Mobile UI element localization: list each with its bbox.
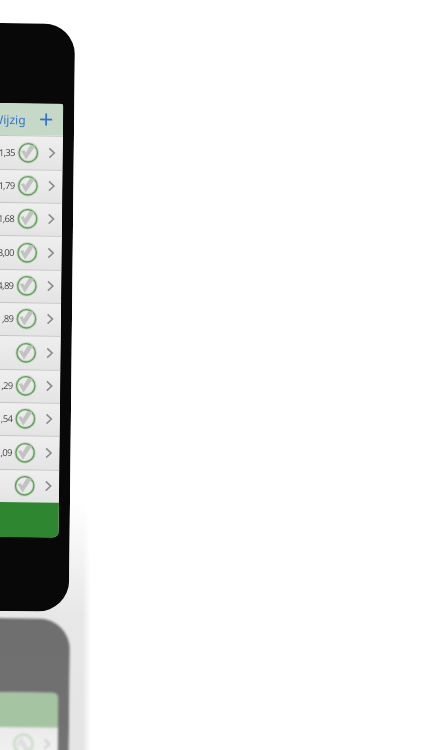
button[interactable] bbox=[0, 690, 58, 728]
button[interactable]: ,89 bbox=[0, 300, 61, 336]
button[interactable]: Add item bbox=[34, 107, 58, 132]
staticText: 1,35 bbox=[0, 146, 16, 159]
staticText: ,89 bbox=[2, 312, 14, 325]
button[interactable]: Wijzig bbox=[0, 107, 29, 131]
button[interactable]: ,29 bbox=[0, 367, 60, 403]
button[interactable]: 1,35 bbox=[0, 133, 63, 170]
button[interactable]: ,09 bbox=[0, 433, 60, 470]
staticText: Wijzig bbox=[0, 111, 26, 127]
button[interactable]: 4,89 bbox=[0, 267, 61, 303]
staticText: ,29 bbox=[1, 379, 13, 392]
button[interactable]: 3,00 bbox=[0, 233, 62, 270]
button[interactable] bbox=[0, 725, 58, 750]
button[interactable] bbox=[0, 500, 59, 538]
button[interactable]: 1,79 bbox=[0, 167, 63, 203]
staticText: 4,89 bbox=[0, 279, 14, 292]
staticText: ,54 bbox=[1, 412, 13, 425]
staticText: ,09 bbox=[0, 446, 13, 459]
button[interactable]: 1,68 bbox=[0, 200, 62, 236]
staticText: 3,00 bbox=[0, 246, 15, 259]
button[interactable]: ,54 bbox=[0, 400, 60, 436]
staticText: 1,79 bbox=[0, 179, 16, 192]
button[interactable] bbox=[0, 333, 61, 370]
button[interactable] bbox=[0, 467, 59, 503]
staticText: 1,68 bbox=[0, 212, 15, 225]
